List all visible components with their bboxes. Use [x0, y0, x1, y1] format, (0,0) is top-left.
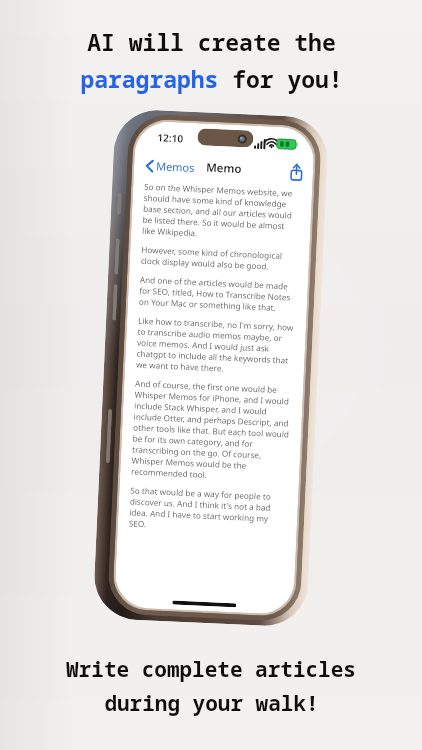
staticText: So on the Whisper Memos website, we shou…: [142, 181, 301, 243]
button[interactable]: Memos: [134, 154, 204, 178]
staticText: Memos: [156, 158, 195, 175]
staticText: during your walk!: [104, 689, 319, 718]
staticText: Memo: [206, 160, 242, 177]
staticText: Like how to transcribe, no I'm sorry, ho…: [136, 315, 295, 377]
staticText: 12:10: [157, 130, 184, 145]
staticText: So that would be a way for people to dis…: [129, 484, 287, 536]
button[interactable]: Share: [279, 161, 313, 183]
staticText: paragraphs for you!: [80, 63, 343, 94]
staticText: And one of the articles would be made fo…: [139, 274, 297, 314]
staticText: Write complete articles: [66, 655, 356, 684]
staticText: However, some kind of chronological cloc…: [141, 244, 298, 273]
staticText: And of course, the first one would be Wh…: [131, 378, 292, 484]
staticText: AI will create the: [87, 26, 336, 57]
